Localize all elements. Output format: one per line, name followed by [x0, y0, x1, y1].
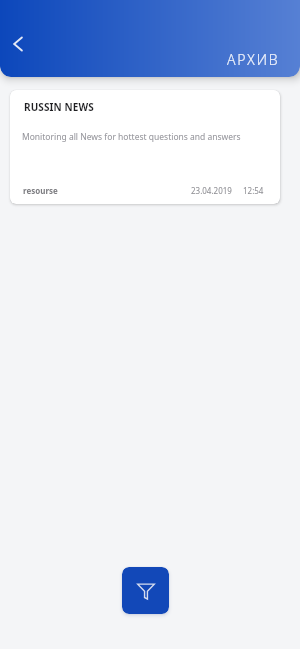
staticText: Monitoring all News for hottest question…: [22, 131, 241, 143]
staticText: АРХИВ: [227, 50, 280, 69]
button[interactable]: RUSSIN NEWS: [10, 90, 280, 204]
staticText: 12:54: [243, 185, 264, 196]
button[interactable]: АРХИВ: [227, 50, 280, 69]
staticText: resourse: [23, 185, 58, 196]
button[interactable]: Back: [5, 30, 33, 58]
staticText: RUSSIN NEWS: [24, 100, 94, 114]
button[interactable]: Filter: [122, 567, 169, 614]
staticText: 23.04.2019: [191, 185, 232, 196]
